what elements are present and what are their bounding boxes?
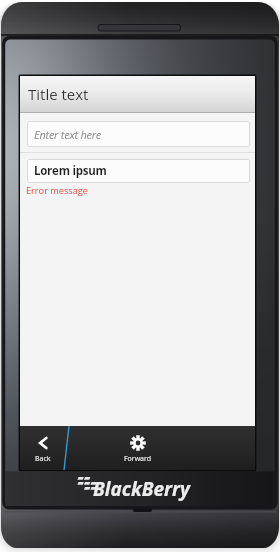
staticText: Title text xyxy=(28,84,89,104)
staticText: BlackBerry xyxy=(93,476,190,502)
staticText: Back xyxy=(35,454,51,464)
button[interactable]: Forward xyxy=(113,426,163,470)
button[interactable]: Back xyxy=(20,426,65,470)
other: Forward xyxy=(130,435,146,451)
staticText: Enter text here xyxy=(34,127,102,142)
button[interactable]: Title text xyxy=(20,76,255,112)
button[interactable]: Lorem ipsum xyxy=(27,159,250,183)
staticText: Forward xyxy=(124,454,152,464)
staticText: Error message xyxy=(26,184,88,197)
button[interactable]: Enter text here xyxy=(27,121,250,147)
other: Back xyxy=(37,437,49,449)
staticText: Lorem ipsum xyxy=(34,163,107,179)
